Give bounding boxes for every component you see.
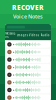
button[interactable]: ▶	[6, 56, 50, 63]
button[interactable]: Images	[16, 32, 28, 38]
staticText: Videos	[29, 33, 39, 37]
staticText: ▶	[13, 50, 15, 53]
button[interactable]: ▶	[6, 94, 50, 100]
button[interactable]: Audio	[39, 32, 51, 38]
staticText: Voice Notes	[13, 13, 43, 20]
button[interactable]: Videos	[28, 32, 39, 38]
staticText: Audio	[41, 33, 50, 37]
button[interactable]: ▶	[6, 41, 50, 48]
staticText: ▶	[13, 43, 15, 46]
button[interactable]: ▶	[6, 49, 50, 55]
button[interactable]: Messages	[5, 30, 16, 40]
staticText: Images	[17, 33, 28, 37]
staticText: ▶	[13, 88, 15, 91]
staticText: ▶	[13, 81, 15, 84]
button[interactable]: ▶	[6, 71, 50, 78]
button[interactable]: ▶	[6, 79, 50, 86]
staticText: RECOVER	[12, 3, 44, 12]
staticText: Messages	[5, 32, 16, 39]
staticText: ▶	[13, 96, 15, 99]
staticText: ▶	[13, 73, 15, 76]
button[interactable]: ▶	[6, 87, 50, 93]
staticText: ▶	[13, 58, 15, 61]
staticText: ▶	[13, 66, 15, 69]
button[interactable]: ▶	[6, 64, 50, 70]
